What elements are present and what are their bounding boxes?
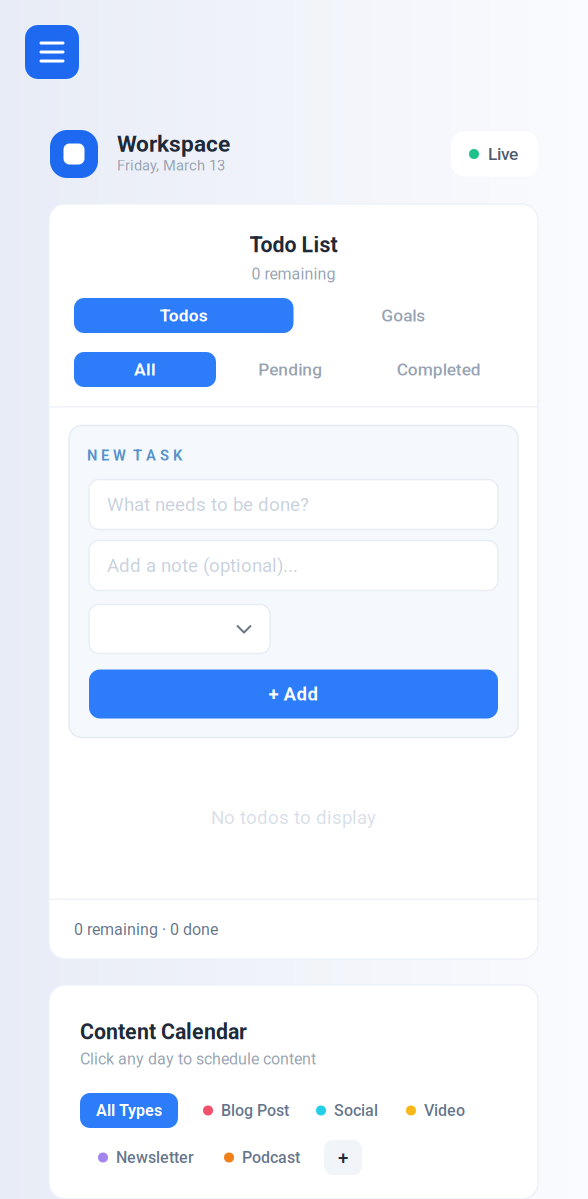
staticText: What needs to be done? [107,494,309,515]
staticText: Blog Post [221,1101,289,1120]
button[interactable]: Live [451,131,538,176]
staticText: Click any day to schedule content [80,1050,316,1068]
button[interactable]: Newsletter [98,1140,194,1175]
staticText: Content Calendar [80,1019,247,1044]
button[interactable]: Category [69,604,270,653]
staticText: Video [424,1101,465,1120]
button[interactable]: Video [406,1093,465,1128]
staticText: + [338,1147,348,1168]
staticText: 0 remaining [251,265,335,283]
staticText: No todos to display [211,807,376,828]
button[interactable]: Podcast [224,1140,300,1175]
staticText: N E W T A S K [87,447,182,464]
staticText: + Add [268,683,318,705]
button[interactable]: Social [316,1093,378,1128]
staticText: 0 remaining · 0 done [74,920,218,939]
staticText: Friday, March 13 [117,157,225,174]
button[interactable]: Blog Post [203,1093,289,1128]
staticText: Workspace [117,131,230,157]
button[interactable]: Pending [216,352,364,387]
staticText: Social [334,1101,378,1120]
staticText: Podcast [242,1148,300,1167]
staticText: Live [488,144,518,164]
button[interactable]: Todos [74,298,293,333]
button[interactable]: Completed [364,352,513,387]
button[interactable]: All [74,352,216,387]
button[interactable]: Menu [25,25,79,79]
staticText: Completed [397,359,481,380]
button[interactable]: + Add [69,669,518,718]
staticText: All Types [96,1101,162,1120]
staticText: Newsletter [116,1148,194,1167]
staticText: Add a note (optional)... [107,555,298,576]
staticText: All [134,359,156,380]
staticText: Pending [258,359,322,380]
button[interactable]: Goals [293,298,513,333]
button[interactable]: Add content type [324,1140,362,1175]
staticText: Goals [381,305,425,326]
staticText: Todo List [249,232,337,257]
staticText: Todos [160,305,208,326]
button[interactable]: All Types [80,1093,178,1128]
